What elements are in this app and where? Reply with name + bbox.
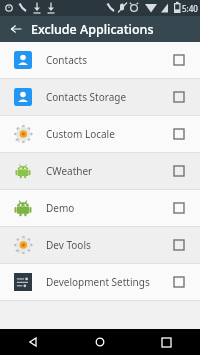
button[interactable]: Exclude Dev Tools (171, 237, 187, 253)
staticText: Custom Locale (46, 127, 171, 141)
staticText: Contacts Storage (46, 90, 171, 104)
button[interactable]: Back (0, 329, 66, 355)
button[interactable]: Exclude Contacts (171, 52, 187, 68)
button[interactable]: Contacts Storage (0, 79, 200, 115)
button[interactable]: Exclude Demo (171, 200, 187, 216)
button[interactable]: Exclude Development Settings (171, 274, 187, 290)
staticText: Demo (46, 201, 171, 215)
button[interactable]: Exclude Custom Locale (171, 126, 187, 142)
button[interactable]: Custom Locale (0, 116, 200, 152)
button[interactable]: CWeather (0, 153, 200, 189)
button[interactable]: Development Settings (0, 264, 200, 300)
button[interactable]: Contacts (0, 42, 200, 78)
button[interactable]: Home (66, 329, 133, 355)
button[interactable]: Demo (0, 190, 200, 226)
button[interactable]: Recent apps (133, 329, 200, 355)
staticText: Dev Tools (46, 238, 171, 252)
button[interactable]: Exclude CWeather (171, 163, 187, 179)
button[interactable]: Dev Tools (0, 227, 200, 263)
staticText: Exclude Applications (31, 21, 154, 38)
staticText: CWeather (46, 164, 171, 178)
staticText: Development Settings (46, 275, 171, 289)
staticText: 5:40 (182, 3, 198, 14)
button[interactable]: Exclude Contacts Storage (171, 89, 187, 105)
staticText: Contacts (46, 53, 171, 67)
button[interactable]: Back (6, 19, 26, 39)
